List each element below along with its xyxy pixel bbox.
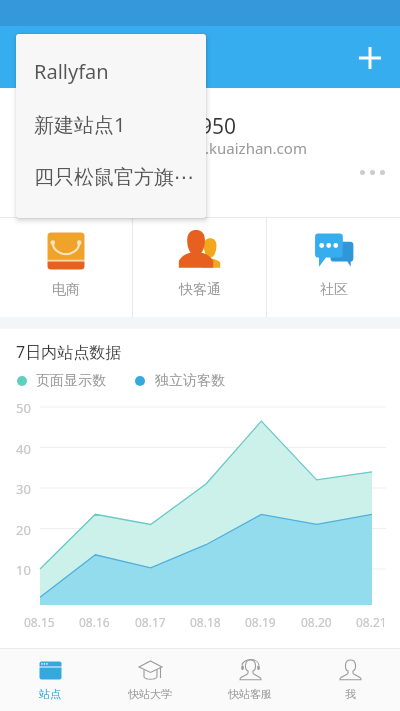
staticText: 7日内站点数据	[16, 341, 122, 363]
staticText: 只松鼠官方旗舰店950	[32, 112, 237, 141]
staticText: 30	[16, 480, 31, 498]
button[interactable]: 四只松鼠官方旗⋯	[16, 151, 206, 204]
button[interactable]: 社区	[267, 218, 400, 317]
staticText: 快站客服	[228, 687, 272, 701]
staticText: 08.18	[190, 614, 221, 630]
staticText: 社区	[320, 281, 348, 299]
button[interactable]: 站点	[0, 648, 100, 711]
staticText: 08.20	[301, 614, 332, 630]
staticText: 50	[16, 399, 31, 417]
staticText: 40	[16, 440, 31, 458]
staticText: 电商	[52, 281, 80, 299]
staticText: Rallyfan	[34, 58, 109, 85]
staticText: 08.15	[24, 614, 55, 630]
staticText: 08.19	[245, 614, 276, 630]
button[interactable]: 快站大学	[100, 648, 200, 711]
button[interactable]: 快站客服	[200, 648, 300, 711]
staticText: 页面显示数	[36, 372, 106, 390]
staticText: 快客通	[179, 281, 221, 299]
staticText: 站点	[39, 687, 61, 701]
staticText: 我	[345, 687, 356, 701]
staticText: 08.21	[356, 614, 387, 630]
staticText: 08.16	[79, 614, 110, 630]
staticText: 新建站点1	[34, 111, 126, 138]
staticText: 20	[16, 521, 31, 539]
button[interactable]: Rallyfan	[16, 45, 206, 98]
staticText: 10	[16, 561, 31, 579]
staticText: 独立访客数	[155, 372, 225, 390]
button[interactable]: Add site	[344, 32, 396, 84]
staticText: 08.17	[135, 614, 166, 630]
staticText: 四只松鼠官方旗舰店铺名字.kuaizhan.com	[25, 138, 307, 158]
staticText: 快站大学	[128, 687, 172, 701]
button[interactable]: More options	[350, 150, 394, 194]
button[interactable]: 电商	[0, 218, 132, 317]
staticText: 四只松鼠官方旗⋯	[34, 165, 194, 190]
button[interactable]: 新建站点1	[16, 98, 206, 151]
button[interactable]: 快客通	[133, 218, 266, 317]
button[interactable]: 我	[300, 648, 400, 711]
